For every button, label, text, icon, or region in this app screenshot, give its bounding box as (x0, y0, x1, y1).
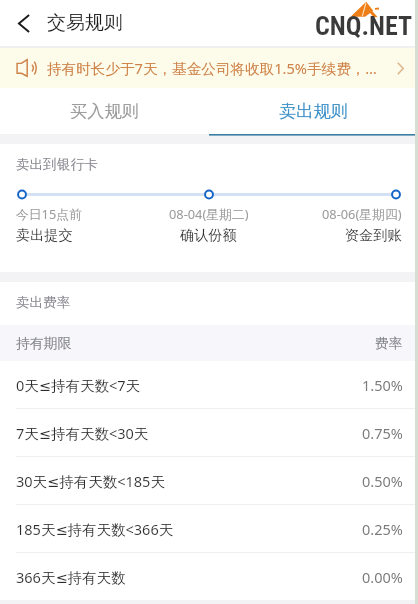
staticText: 持有时长少于7天，基金公司将收取1.5%手续费，… (47, 58, 377, 78)
staticText: CNQ.NET (315, 11, 413, 41)
staticText: 卖出费率 (16, 294, 71, 311)
staticText: 卖出提交 (16, 226, 73, 244)
staticText: 费率 (375, 335, 403, 352)
staticText: 资金到账 (345, 226, 402, 244)
button[interactable]: 30天≤持有天数<185天 (0, 457, 418, 504)
staticText: 0天≤持有天数<7天 (16, 375, 141, 395)
button[interactable]: Back (0, 1, 44, 45)
staticText: 卖出规则 (279, 100, 348, 122)
staticText: 买入规则 (70, 100, 139, 122)
staticText: 08-04(星期二) (169, 205, 249, 222)
staticText: 7天≤持有天数<30天 (16, 423, 149, 443)
button[interactable]: 185天≤持有天数<366天 (0, 505, 418, 552)
staticText: 08-06(星期四) (322, 205, 402, 222)
button[interactable]: 366天≤持有天数 (0, 553, 418, 600)
staticText: 0.50% (362, 471, 403, 491)
button[interactable]: 卖出规则 (209, 88, 418, 134)
staticText: 185天≤持有天数<366天 (16, 519, 174, 539)
button[interactable]: 7天≤持有天数<30天 (0, 409, 418, 456)
staticText: 1.50% (362, 375, 403, 395)
staticText: 交易规则 (47, 11, 123, 35)
staticText: 持有期限 (16, 335, 72, 352)
button[interactable]: 买入规则 (0, 88, 209, 134)
button[interactable]: 0天≤持有天数<7天 (0, 361, 418, 408)
staticText: 0.25% (362, 519, 403, 539)
staticText: 卖出到银行卡 (16, 156, 98, 173)
staticText: 确认份额 (180, 226, 237, 244)
button[interactable]: 持有时长少于7天，基金公司将收取1.5%手续费，… (0, 48, 418, 88)
staticText: 30天≤持有天数<185天 (16, 471, 165, 491)
staticText: 今日15点前 (16, 205, 82, 222)
staticText: 0.00% (362, 567, 403, 587)
staticText: 366天≤持有天数 (16, 567, 126, 587)
staticText: 0.75% (362, 423, 403, 443)
